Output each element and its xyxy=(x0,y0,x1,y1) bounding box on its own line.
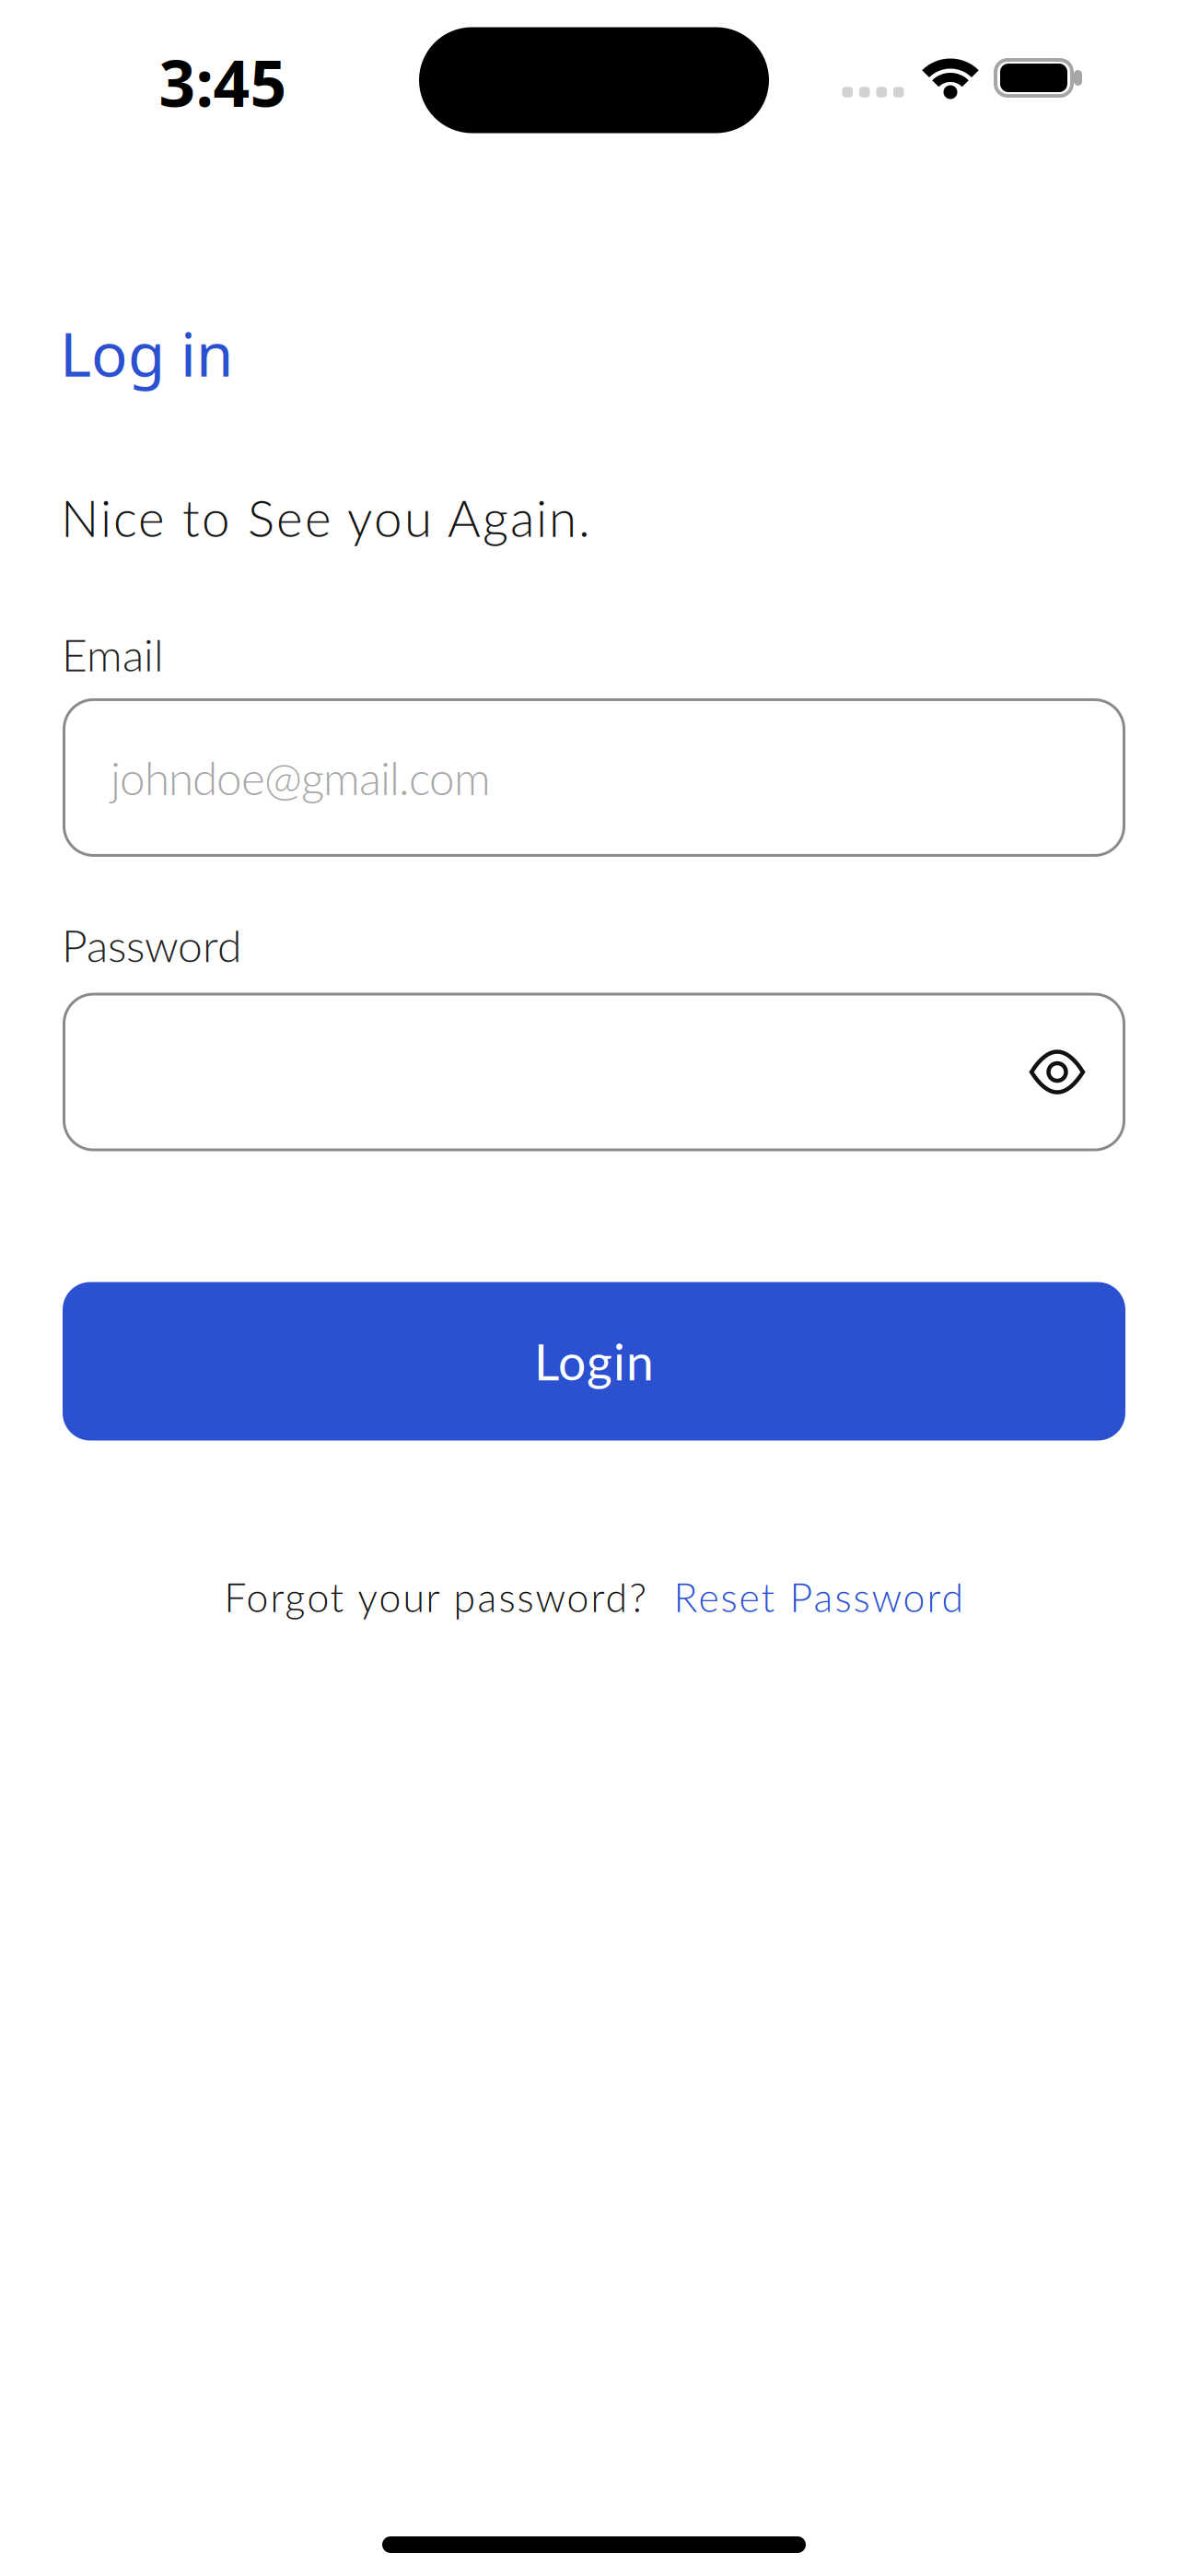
staticText: Email xyxy=(62,628,164,681)
staticText: Forgot your password? xyxy=(224,1573,646,1620)
secureTextField[interactable] xyxy=(111,1035,1125,1109)
button[interactable]: Reset Password xyxy=(674,1573,964,1620)
button[interactable]: Login xyxy=(63,1282,1125,1441)
staticText: Login xyxy=(534,1332,654,1391)
staticText: Reset Password xyxy=(674,1573,964,1620)
staticText: Password xyxy=(62,919,241,972)
staticText: Log in xyxy=(60,313,233,393)
button[interactable]: Show password xyxy=(1022,1037,1092,1107)
textField[interactable] xyxy=(111,741,1125,814)
staticText: 3:45 xyxy=(159,40,287,124)
staticText: Nice to See you Again. xyxy=(61,487,590,548)
staticText: johndoe@gmail.com xyxy=(111,750,491,805)
